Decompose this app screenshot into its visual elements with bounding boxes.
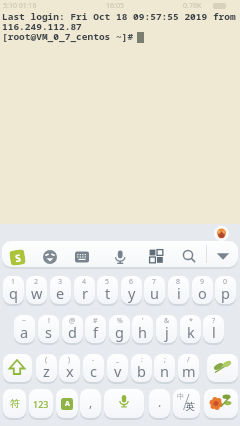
staticText: 9 [200,277,205,287]
button[interactable]: 123 [29,389,53,418]
staticText: v [114,361,122,381]
staticText: S [14,251,22,265]
button[interactable] [74,249,90,265]
button[interactable]: 5 [97,276,118,304]
staticText: 5:10 01:16 [3,1,37,11]
staticText: Last login: Fri Oct 18 09:57:55 2019 fro… [2,10,236,23]
button[interactable]: & [156,315,177,343]
button[interactable]: ( [36,354,57,382]
staticText: i [177,283,181,303]
button[interactable]: , [80,389,101,418]
staticText: c [90,361,97,381]
staticText: 2 [34,277,39,287]
staticText: 16:05 [106,1,124,11]
button[interactable]: _ [107,354,128,382]
staticText: # [93,316,98,326]
staticText: d [68,322,77,342]
button[interactable]: 中 [173,389,200,418]
staticText: 0.76K [183,1,202,11]
button[interactable]: 1 [3,276,24,304]
staticText: k [187,322,195,342]
staticText: 7 [152,277,157,287]
staticText: j [165,322,169,342]
button[interactable]: * [180,315,201,343]
staticText: ' [142,316,144,326]
staticText: ? [212,316,216,326]
staticText: 1 [11,277,16,287]
staticText: [root@VM_0_7_centos ~]# [2,30,134,43]
button[interactable]: A [56,389,78,418]
button[interactable]: 7 [144,276,165,304]
button[interactable] [204,389,238,418]
button[interactable] [104,389,144,418]
staticText: 英 [185,400,195,413]
staticText: 6 [129,277,134,287]
staticText: 中 [177,392,184,401]
button[interactable]: ! [38,315,59,343]
staticText: a [20,322,29,342]
button[interactable]: # [85,315,106,343]
staticText: ) [68,355,71,365]
staticText: ; [164,355,166,365]
staticText: e [56,283,65,303]
button[interactable] [207,354,238,382]
staticText: z [43,361,50,381]
button[interactable]: % [109,315,130,343]
button[interactable] [42,249,58,265]
button[interactable] [214,226,229,241]
staticText: _ [116,355,120,365]
staticText: ! [48,316,50,326]
staticText: ( [45,355,48,365]
button[interactable]: 0 [215,276,236,304]
button[interactable] [148,248,164,264]
staticText: r [82,283,88,303]
staticText: 0 [223,277,228,287]
button[interactable]: 6 [121,276,142,304]
button[interactable]: ~ [14,315,35,343]
staticText: w [31,283,43,303]
staticText: ~ [22,316,27,326]
button[interactable]: . [149,389,170,418]
button[interactable]: 9 [192,276,213,304]
staticText: / [187,355,190,365]
staticText: h [138,322,147,342]
button[interactable]: 3 [50,276,71,304]
button[interactable]: ' [132,315,153,343]
button[interactable]: ? [203,315,224,343]
staticText: n [160,361,169,381]
button[interactable]: 8 [168,276,189,304]
button[interactable] [215,248,231,264]
staticText: o [198,283,207,303]
button[interactable] [112,249,128,265]
button[interactable]: ; [154,354,175,382]
staticText: t [105,283,111,303]
button[interactable] [3,354,32,382]
button[interactable]: @ [62,315,83,343]
staticText: g [115,322,124,342]
button[interactable]: - [83,354,104,382]
button[interactable]: / [178,354,199,382]
staticText: 5 [105,277,110,287]
button[interactable]: : [131,354,152,382]
button[interactable]: S [9,249,26,266]
staticText: m [182,361,196,381]
staticText: @ [69,316,76,326]
staticText: * [189,316,193,326]
staticText: : [141,355,143,365]
button[interactable]: 2 [26,276,47,304]
staticText: b [137,361,146,381]
staticText: 123 [33,398,49,410]
staticText: 8 [176,277,181,287]
staticText: 4 [82,277,87,287]
staticText: q [9,283,18,303]
button[interactable]: 符 [3,389,26,418]
button[interactable]: 4 [74,276,95,304]
staticText: x [66,361,74,381]
staticText: & [164,316,170,326]
staticText: - [92,355,95,365]
button[interactable]: ) [59,354,80,382]
staticText: 符 [10,397,20,410]
button[interactable] [181,248,197,264]
staticText: p [221,283,230,303]
staticText: y [128,283,136,303]
